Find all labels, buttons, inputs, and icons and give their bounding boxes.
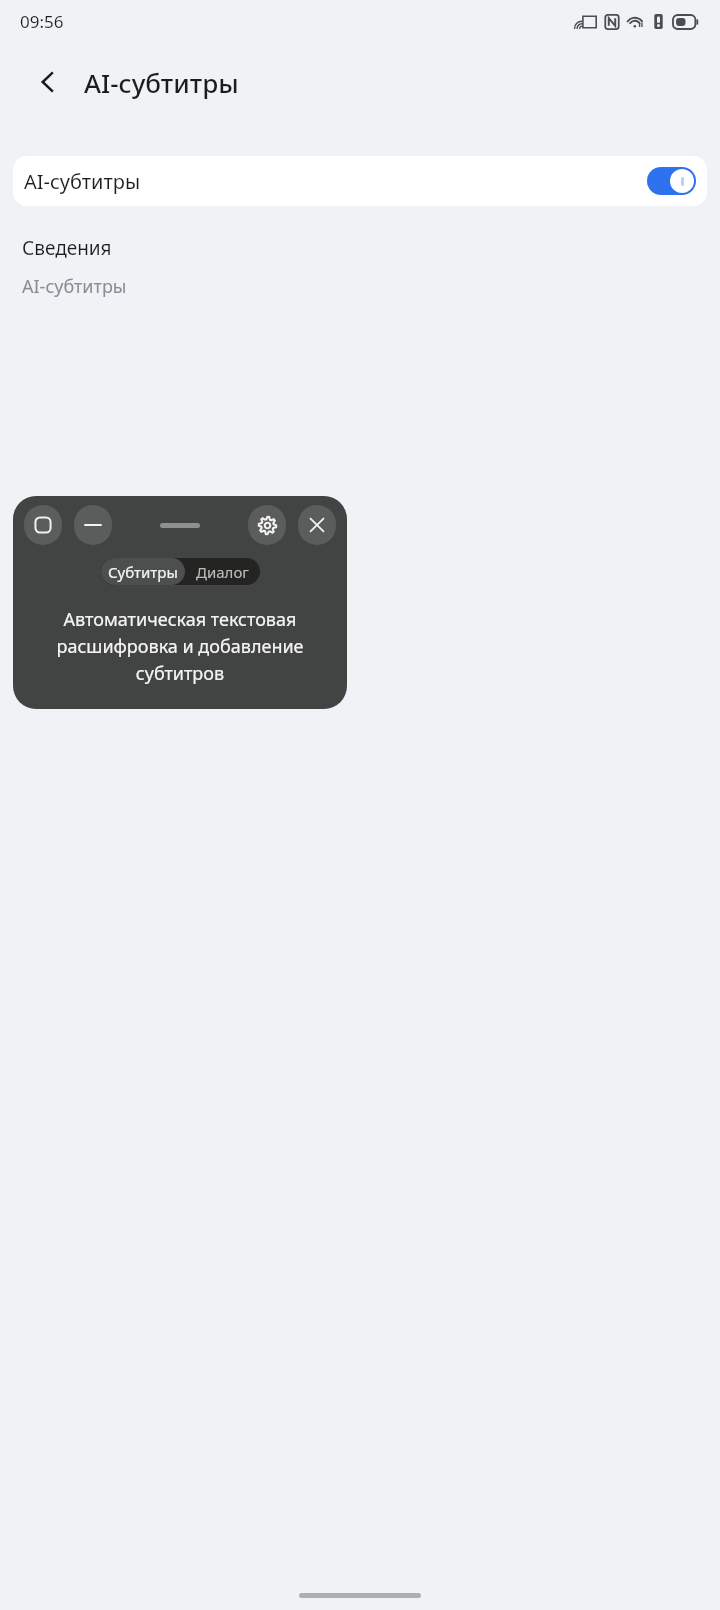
button[interactable]: Minimize [74,505,112,545]
staticText: AI-субтитры [84,65,239,100]
button[interactable]: Субтитры [101,558,185,585]
button[interactable]: Диалог [185,558,260,585]
button[interactable] [647,167,696,195]
staticText: Субтитры [108,562,178,582]
button[interactable]: Back [24,58,72,106]
staticText: AI-субтитры [22,274,127,299]
button[interactable]: Close [298,505,336,545]
button[interactable]: Picture in picture [24,505,62,545]
button[interactable]: Settings [248,505,286,545]
staticText: 09:56 [20,10,64,33]
staticText: Автоматическая текстовая расшифровка и д… [23,607,337,685]
staticText: Сведения [22,235,112,261]
staticText: AI-субтитры [24,168,141,195]
button[interactable]: AI-субтитры [13,156,707,206]
staticText: Диалог [196,562,249,582]
